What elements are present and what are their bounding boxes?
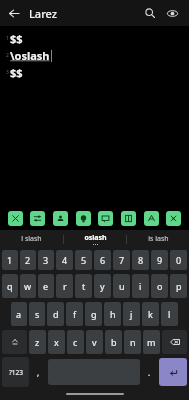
staticText: 3 — [43, 254, 49, 266]
button[interactable]: 8 — [132, 250, 149, 270]
button[interactable]: is lash — [127, 230, 189, 248]
button[interactable]: t — [75, 274, 92, 298]
staticText: v — [92, 336, 97, 348]
staticText: p — [176, 280, 182, 292]
button[interactable]: l slash — [0, 230, 63, 248]
staticText: 1 — [6, 35, 9, 42]
staticText: x — [54, 336, 59, 348]
staticText: oslash — [84, 233, 107, 243]
staticText: m — [147, 336, 156, 348]
button[interactable]: n — [124, 330, 141, 354]
staticText: 2 — [25, 254, 31, 266]
staticText: n — [130, 336, 136, 348]
button[interactable]: 1 — [2, 250, 18, 270]
staticText: $$ — [10, 65, 23, 80]
button[interactable]: 9 — [151, 250, 168, 270]
staticText: i — [139, 280, 142, 292]
button[interactable]: Tool 7 — [144, 211, 159, 226]
button[interactable]: x — [48, 330, 65, 354]
staticText: 0 — [176, 254, 182, 266]
staticText: $$ — [10, 31, 23, 46]
staticText: o — [157, 280, 163, 292]
button[interactable]: Search — [139, 2, 161, 24]
staticText: q — [7, 280, 13, 292]
staticText: r — [63, 280, 67, 292]
button[interactable]: r — [56, 274, 73, 298]
button[interactable]: , — [31, 357, 46, 387]
button[interactable]: 5 — [75, 250, 92, 270]
staticText: l — [168, 308, 171, 320]
button[interactable]: b — [105, 330, 122, 354]
staticText: d — [53, 308, 59, 320]
button[interactable]: 6 — [94, 250, 111, 270]
staticText: g — [91, 308, 97, 320]
button[interactable]: s — [29, 302, 45, 326]
button[interactable]: q — [2, 274, 18, 298]
staticText: k — [148, 308, 153, 320]
button[interactable]: Shift — [2, 330, 27, 354]
button[interactable]: 4 — [56, 250, 73, 270]
button[interactable]: p — [170, 274, 187, 298]
button[interactable]: Tool 1 — [8, 211, 23, 226]
staticText: a — [16, 308, 22, 320]
button[interactable]: 0 — [170, 250, 187, 270]
staticText: 8 — [138, 254, 144, 266]
button[interactable]: Preview — [161, 2, 183, 24]
staticText: 9 — [157, 254, 163, 266]
staticText: e — [43, 280, 49, 292]
button[interactable]: l — [161, 302, 178, 326]
staticText: Larez — [29, 6, 58, 21]
button[interactable]: v — [86, 330, 103, 354]
button[interactable]: j — [123, 302, 140, 326]
button[interactable]: Backspace — [162, 330, 187, 354]
button[interactable]: h — [104, 302, 121, 326]
button[interactable]: Tool 2 — [30, 211, 45, 226]
button[interactable]: w — [20, 274, 36, 298]
button[interactable]: Enter — [159, 358, 187, 386]
button[interactable]: a — [11, 302, 27, 326]
staticText: z — [35, 336, 40, 348]
staticText: 1 — [7, 254, 13, 266]
button[interactable]: y — [94, 274, 111, 298]
button[interactable]: c — [67, 330, 84, 354]
button[interactable]: g — [85, 302, 102, 326]
button[interactable]: Back — [3, 3, 23, 23]
button[interactable]: o — [151, 274, 168, 298]
button[interactable]: i — [132, 274, 149, 298]
button[interactable]: oslash — [64, 230, 126, 248]
button[interactable]: z — [29, 330, 46, 354]
staticText: , — [37, 367, 40, 378]
staticText: w — [24, 280, 32, 292]
button[interactable]: 7 — [113, 250, 130, 270]
button[interactable]: f — [66, 302, 83, 326]
staticText: 2 — [6, 52, 9, 59]
button[interactable]: d — [47, 302, 64, 326]
staticText: . — [148, 367, 151, 378]
button[interactable]: ?123 — [2, 357, 29, 387]
staticText: 7 — [119, 254, 125, 266]
staticText: 5 — [81, 254, 87, 266]
staticText: \oslash — [10, 48, 50, 63]
button[interactable]: u — [113, 274, 130, 298]
staticText: c — [73, 336, 78, 348]
staticText: h — [110, 308, 116, 320]
staticText: 4 — [62, 254, 68, 266]
button[interactable]: 2 — [20, 250, 36, 270]
staticText: 6 — [100, 254, 106, 266]
staticText: f — [73, 308, 77, 320]
staticText: 3 — [6, 69, 9, 76]
button[interactable]: e — [38, 274, 54, 298]
button[interactable]: m — [143, 330, 160, 354]
button[interactable]: k — [142, 302, 159, 326]
button[interactable]: 3 — [38, 250, 54, 270]
button[interactable]: Tool 8 — [166, 211, 181, 226]
button[interactable]: . — [142, 357, 157, 387]
button[interactable]: Tool 6 — [121, 211, 136, 226]
button[interactable]: Tool 3 — [53, 211, 68, 226]
staticText: ?123 — [9, 368, 23, 377]
button[interactable]: Tool 5 — [98, 211, 113, 226]
staticText: s — [35, 308, 40, 320]
staticText: is lash — [148, 234, 169, 244]
button[interactable]: Tool 4 — [76, 211, 91, 226]
